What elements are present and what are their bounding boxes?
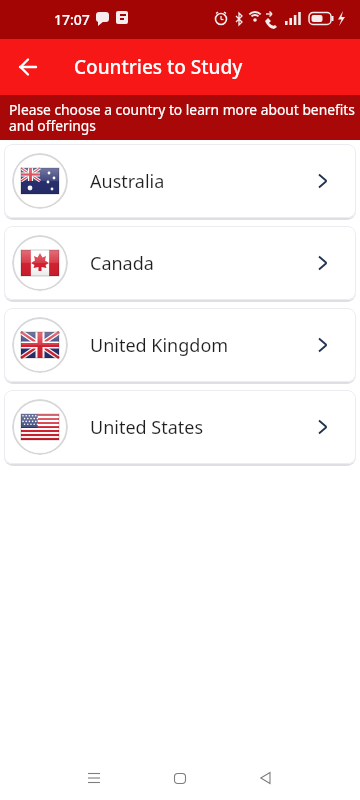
button[interactable]: Australia xyxy=(4,144,356,218)
button[interactable] xyxy=(160,758,200,798)
staticText: 17:07 xyxy=(54,10,90,29)
button[interactable] xyxy=(8,47,48,87)
staticText: Please choose a country to learn more ab… xyxy=(9,100,355,135)
button[interactable]: Canada xyxy=(4,226,356,300)
staticText: Canada xyxy=(90,251,318,276)
staticText: Countries to Study xyxy=(74,54,243,80)
button[interactable]: United States xyxy=(4,390,356,464)
staticText: United States xyxy=(90,415,318,440)
button[interactable]: United Kingdom xyxy=(4,308,356,382)
button[interactable] xyxy=(245,758,285,798)
staticText: United Kingdom xyxy=(90,333,318,358)
button[interactable] xyxy=(75,758,115,798)
staticText: Australia xyxy=(90,169,318,194)
